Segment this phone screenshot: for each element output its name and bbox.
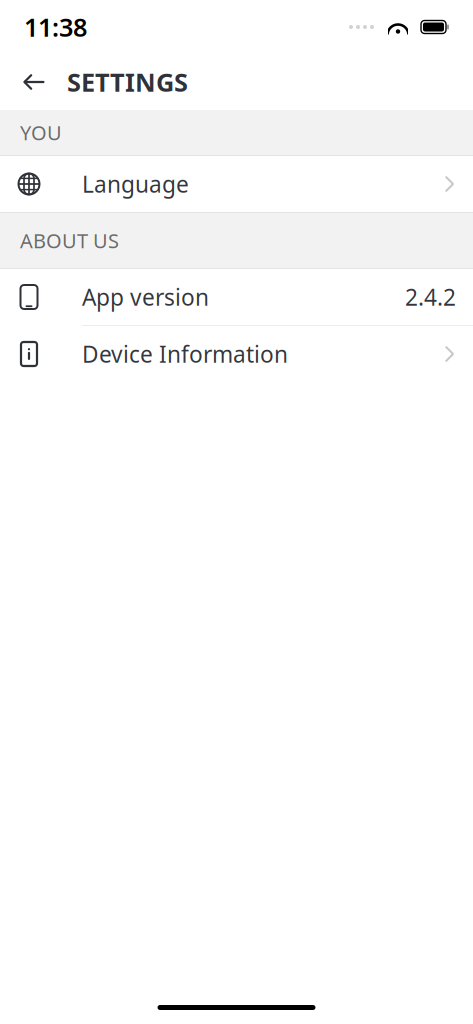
staticText: SETTINGS — [67, 65, 188, 99]
staticText: 11:38 — [24, 10, 87, 44]
button[interactable]: Language — [0, 156, 473, 212]
button[interactable]: App version — [0, 269, 473, 325]
staticText: 2.4.2 — [405, 282, 456, 312]
staticText: Language — [82, 169, 189, 199]
button[interactable]: Back — [17, 65, 51, 99]
staticText: Device Information — [82, 339, 288, 369]
staticText: ABOUT US — [20, 227, 119, 254]
button[interactable]: Device Information — [0, 326, 473, 382]
staticText: YOU — [20, 119, 62, 146]
staticText: App version — [82, 282, 209, 312]
